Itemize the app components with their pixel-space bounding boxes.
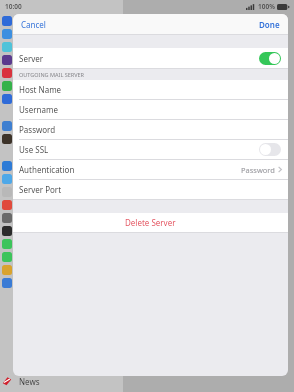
staticText: Authentication [19,164,75,175]
button[interactable]: Delete Server [13,213,288,232]
button[interactable]: Use SSL [13,140,288,159]
button[interactable]: Server Port [13,180,288,199]
staticText: 10:00 [5,2,22,11]
button[interactable]: Cancel [17,16,50,33]
staticText: 100% [258,2,275,11]
button[interactable]: Password [13,120,288,139]
button[interactable]: Done [255,16,284,33]
button[interactable]: Host Name [13,80,288,99]
button[interactable]: Server [13,48,288,68]
button[interactable]: Toggle off [259,143,281,156]
button[interactable]: Username [13,100,288,119]
staticText: Use SSL [19,144,49,155]
staticText: Server Port [19,184,62,195]
staticText: Done [259,19,280,30]
button[interactable]: Authentication [13,160,288,179]
staticText: OUTGOING MAIL SERVER [19,71,84,78]
staticText: Username [19,104,58,115]
staticText: Delete Server [125,217,176,228]
staticText: Password [241,165,275,175]
staticText: Password [19,124,56,135]
staticText: Host Name [19,84,62,95]
button[interactable]: Toggle on [259,52,281,65]
staticText: Server [19,53,44,64]
staticText: Cancel [21,19,46,30]
staticText: News [19,376,40,387]
